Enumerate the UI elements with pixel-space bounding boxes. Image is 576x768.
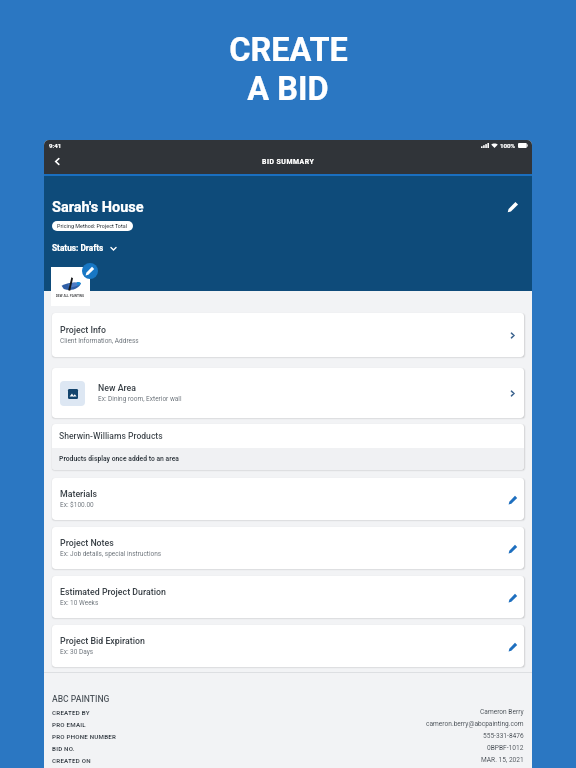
button[interactable]: Edit Project Bid Expiration [505,639,521,655]
button[interactable]: Open Project Info [504,327,520,343]
staticText: BID SUMMARY [262,158,315,166]
staticText: Sherwin-Williams Products [59,431,163,441]
button[interactable]: Edit Project Notes [505,541,521,557]
button[interactable]: Project Info [52,313,524,357]
staticText: MAR. 15, 2021 [481,756,524,764]
button[interactable]: Project Bid Expiration [52,625,524,667]
staticText: Materials [60,489,98,499]
staticText: Project Notes [60,538,114,548]
staticText: Client Information, Address [60,337,139,345]
staticText: Ex: Job details, special instructions [60,550,162,558]
button[interactable]: New Area [52,368,524,418]
staticText: Ex: $100.00 [60,501,94,509]
staticText: CREATED ON [52,757,91,764]
staticText: PRO EMAIL [52,721,86,728]
button[interactable]: Materials [52,478,524,520]
staticText: Ex: Dining room, Exterior wall [98,395,182,403]
button[interactable]: Project Notes [52,527,524,569]
staticText: 9:41 [49,142,62,149]
staticText: Status: Drafts [52,243,104,253]
staticText: New Area [98,383,137,393]
staticText: 100% [500,142,516,149]
staticText: cameron.berry@abcpainting.com [426,720,524,728]
button[interactable]: Estimated Project Duration [52,576,524,618]
staticText: CREATED BY [52,709,90,716]
staticText: Cameron Berry [480,708,524,716]
staticText: PRO PHONE NUMBER [52,733,117,740]
staticText: 555-331-8476 [483,732,524,740]
staticText: ABC PAINTING [52,694,110,704]
staticText: Project Info [60,325,106,335]
button[interactable]: Edit Estimated Project Duration [505,590,521,606]
staticText: Ex: 10 Weeks [60,599,99,607]
staticText: Products display once added to an area [59,455,179,463]
staticText: CREATE [229,31,348,69]
staticText: Project Bid Expiration [60,636,145,646]
staticText: A BID [247,70,329,108]
button[interactable]: Back [46,150,68,172]
staticText: Estimated Project Duration [60,587,166,597]
button[interactable]: Edit Materials [505,492,521,508]
staticText: DEW ALL PAINTING [56,294,85,298]
button[interactable]: Edit logo [82,263,98,279]
button[interactable]: Open New Area [504,385,520,401]
button[interactable]: Edit bid [502,196,524,218]
staticText: 0BPBF-1012 [487,744,524,752]
staticText: Sarah's House [52,199,144,216]
staticText: Pricing Method: Project Total [57,223,128,229]
staticText: BID NO. [52,745,75,752]
staticText: Ex: 30 Days [60,648,94,656]
